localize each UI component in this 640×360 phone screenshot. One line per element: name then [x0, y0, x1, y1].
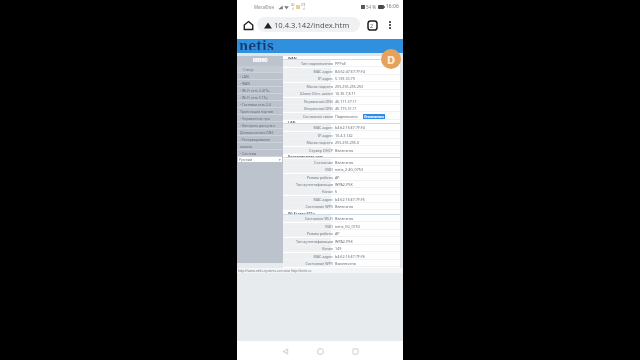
- staticText: канала: [240, 144, 252, 149]
- staticText: 149: [335, 246, 342, 251]
- staticText: Состояние связи: [303, 114, 333, 119]
- staticText: Состояние WPS: [305, 204, 333, 209]
- button[interactable]: Home: [313, 344, 327, 358]
- staticText: МегаФон: [254, 4, 275, 10]
- button[interactable]: Динамические DNS: [237, 129, 283, 136]
- staticText: Выключено: [335, 261, 356, 266]
- staticText: 255.255.255.255: [335, 84, 364, 89]
- button[interactable]: 10.4.3.142/index.htm: [257, 17, 360, 32]
- staticText: Канал: [322, 246, 333, 251]
- button[interactable]: Open tabs: [364, 17, 380, 33]
- staticText: 6: [335, 189, 338, 194]
- staticText: 5.139.33.79: [335, 76, 355, 81]
- button[interactable]: Система: [237, 150, 283, 157]
- staticText: B4:62:47:E7:7F:F4: [335, 69, 366, 74]
- staticText: D: [387, 52, 396, 67]
- button[interactable]: канала: [237, 143, 283, 150]
- button[interactable]: Трансляция портов: [237, 108, 283, 115]
- button[interactable]: Резервирование: [237, 136, 283, 143]
- staticText: Канал: [322, 189, 333, 194]
- staticText: ıl: [303, 7, 305, 11]
- staticText: WPA2-PSK: [335, 239, 353, 244]
- button[interactable]: More options: [382, 17, 398, 33]
- staticText: LTE: [301, 3, 306, 7]
- staticText: Управление про: [242, 116, 270, 121]
- button[interactable]: Русский: [238, 157, 282, 162]
- button[interactable]: LAN: [237, 73, 283, 80]
- staticText: Подключено: [335, 114, 358, 119]
- staticText: netis: [239, 36, 274, 50]
- staticText: Маска подсети: [306, 84, 333, 89]
- button[interactable]: Управление про: [237, 115, 283, 122]
- staticText: Вторичный DNS: [304, 106, 333, 111]
- staticText: Состояние: [314, 160, 333, 165]
- button[interactable]: Wi-Fi сеть 5 ГГц: [237, 94, 283, 101]
- button[interactable]: Home: [240, 17, 256, 33]
- staticText: Состояние WPS: [305, 261, 333, 266]
- staticText: Включено: [335, 216, 354, 221]
- staticText: 46.175.31.11: [335, 106, 357, 111]
- staticText: Wi-Fi сеть 5ГГц: [288, 211, 315, 215]
- staticText: LAN: [242, 74, 249, 79]
- staticText: Сервер DHCP: [309, 148, 333, 153]
- staticText: Режим работы: [306, 231, 333, 236]
- staticText: Русский: [239, 157, 252, 162]
- staticText: b4:62:16:E7:7F:F4: [335, 125, 365, 130]
- staticText: Первичный DNS: [303, 99, 333, 104]
- staticText: Статус: [243, 67, 254, 72]
- staticText: MAC-адрес: [313, 254, 333, 259]
- staticText: LAN: [288, 120, 296, 124]
- staticText: 16:06: [386, 3, 399, 10]
- staticText: Беспроводная сеть: [288, 154, 324, 158]
- button[interactable]: Контроль доступа к: [237, 122, 283, 129]
- staticText: Система: [242, 151, 257, 156]
- staticText: WAN: [288, 56, 297, 60]
- staticText: 10.4.3.142: [335, 133, 353, 138]
- button[interactable]: Back: [278, 344, 292, 358]
- staticText: ıl: [292, 7, 294, 11]
- staticText: AP: [335, 175, 340, 180]
- staticText: IP-адрес: [317, 76, 333, 81]
- staticText: netis_5G_0753: [335, 224, 360, 229]
- staticText: PPPoE: [335, 61, 346, 66]
- staticText: Гостевая сеть 2.4: [242, 102, 271, 107]
- staticText: WPA2-PSK: [335, 182, 353, 187]
- staticText: AP: [335, 231, 340, 236]
- staticText: 10.4.3.142/index.htm: [274, 20, 350, 30]
- staticText: MAC-адрес: [313, 197, 333, 202]
- staticText: ▾: [279, 158, 281, 162]
- staticText: http://www.netis-systems.com или http://…: [238, 269, 312, 273]
- staticText: WAN: [242, 81, 251, 86]
- staticText: Тип аутентификации: [295, 182, 333, 187]
- staticText: Резервирование: [242, 137, 271, 142]
- staticText: Wi-Fi сеть 2.4ГГц: [242, 88, 270, 93]
- staticText: MAC-адрес: [313, 125, 333, 130]
- staticText: Включено: [335, 148, 354, 153]
- staticText: 4G: [291, 3, 295, 7]
- button[interactable]: Статус: [237, 66, 283, 73]
- staticText: Трансляция портов: [240, 109, 274, 114]
- staticText: SSID: [325, 167, 333, 172]
- staticText: Тип аутентификации: [295, 239, 333, 244]
- button[interactable]: Recent apps: [348, 344, 362, 358]
- staticText: Wi-Fi сеть 5 ГГц: [242, 95, 268, 100]
- staticText: 255.255.255.0: [335, 140, 360, 145]
- staticText: Контроль доступа к: [242, 123, 276, 128]
- staticText: b4:62:16:E7:7F:F6: [335, 254, 365, 259]
- staticText: IP-адрес: [317, 133, 333, 138]
- staticText: SSID: [325, 224, 333, 229]
- staticText: Включено: [335, 160, 354, 165]
- button[interactable]: Гостевая сеть 2.4: [237, 101, 283, 108]
- button[interactable]: WAN: [237, 80, 283, 87]
- staticText: Тип подключения: [301, 61, 333, 66]
- staticText: 2: [370, 22, 374, 29]
- button[interactable]: Отключиться: [363, 114, 385, 120]
- staticText: Включено: [335, 204, 354, 209]
- button[interactable]: Password manager: [381, 49, 401, 69]
- staticText: b4:62:16:E7:7F:F5: [335, 197, 365, 202]
- staticText: 54 %: [366, 4, 377, 10]
- staticText: Режим работы: [306, 175, 333, 180]
- staticText: netis_2.4G_0753: [335, 167, 364, 172]
- button[interactable]: Wi-Fi сеть 2.4ГГц: [237, 87, 283, 94]
- staticText: Состояние Wi-Fi: [304, 216, 333, 221]
